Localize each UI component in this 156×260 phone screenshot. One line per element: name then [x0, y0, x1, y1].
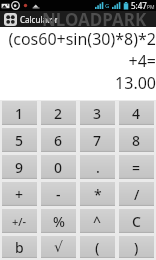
- staticText: .: [96, 158, 100, 177]
- button[interactable]: 9: [2, 155, 37, 179]
- staticText: 7: [93, 131, 102, 150]
- button[interactable]: b: [2, 236, 37, 258]
- staticText: 4: [132, 104, 141, 123]
- button[interactable]: 1: [2, 101, 37, 125]
- staticText: NLOADPARK: [42, 8, 147, 27]
- button[interactable]: √: [41, 236, 76, 258]
- staticText: 8: [132, 131, 141, 150]
- button[interactable]: ^: [80, 209, 115, 233]
- staticText: +: [15, 185, 24, 204]
- staticText: 9: [15, 158, 24, 177]
- staticText: =: [132, 158, 141, 177]
- button[interactable]: .: [80, 155, 115, 179]
- staticText: PM: [147, 4, 155, 11]
- button[interactable]: 8: [119, 128, 154, 152]
- button[interactable]: 0: [41, 155, 76, 179]
- staticText: +/-: [12, 214, 27, 229]
- staticText: 5:47: [131, 0, 147, 11]
- button[interactable]: 5: [2, 128, 37, 152]
- staticText: 6: [54, 131, 63, 150]
- staticText: b: [15, 238, 24, 257]
- staticText: 0: [54, 158, 63, 177]
- staticText: 2: [54, 104, 63, 123]
- button[interactable]: +/-: [2, 209, 37, 233]
- button[interactable]: (: [80, 236, 115, 258]
- other: Calculator app icon: [4, 13, 17, 26]
- button[interactable]: 2: [41, 101, 76, 125]
- staticText: -: [56, 185, 61, 204]
- button[interactable]: +: [2, 182, 37, 206]
- staticText: C: [132, 212, 141, 231]
- staticText: %: [53, 212, 65, 231]
- button[interactable]: /: [119, 182, 154, 206]
- staticText: /: [134, 185, 140, 204]
- staticText: ): [134, 238, 139, 257]
- staticText: √: [54, 239, 63, 255]
- button[interactable]: 3: [80, 101, 115, 125]
- staticText: 1: [15, 104, 24, 123]
- button[interactable]: 7: [80, 128, 115, 152]
- button[interactable]: %: [41, 209, 76, 233]
- staticText: (: [95, 238, 100, 257]
- staticText: *: [94, 185, 102, 204]
- button[interactable]: *: [80, 182, 115, 206]
- button[interactable]: =: [119, 155, 154, 179]
- button[interactable]: ): [119, 236, 154, 258]
- button[interactable]: -: [41, 182, 76, 206]
- button[interactable]: C: [119, 209, 154, 233]
- staticText: Calculator: [20, 14, 58, 25]
- staticText: 5: [15, 131, 24, 150]
- staticText: +4=: [128, 50, 156, 72]
- staticText: G: [105, 2, 110, 10]
- button[interactable]: 6: [41, 128, 76, 152]
- staticText: 13.00: [115, 72, 156, 94]
- staticText: 3: [93, 104, 102, 123]
- staticText: (cos60+sin(30)*8)*2: [8, 28, 156, 50]
- staticText: ^: [93, 212, 102, 231]
- button[interactable]: 4: [119, 101, 154, 125]
